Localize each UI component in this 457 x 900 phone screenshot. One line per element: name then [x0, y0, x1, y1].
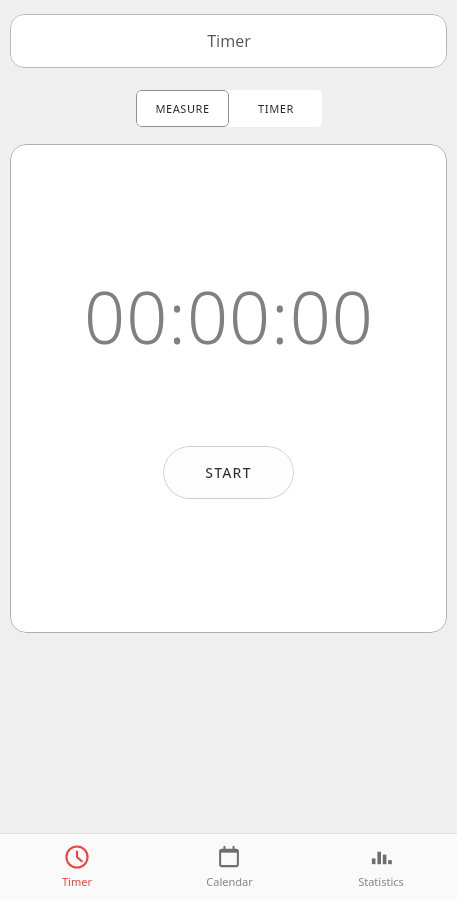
staticText: Calendar	[206, 874, 253, 889]
staticText: 00:00:00	[84, 267, 374, 365]
staticText: Timer	[207, 30, 251, 52]
staticText: Timer	[62, 874, 92, 889]
staticText: Statistics	[358, 874, 404, 889]
button[interactable]: MEASURE	[136, 90, 229, 127]
button[interactable]: Timer	[10, 14, 447, 68]
button[interactable]: Statistics	[305, 834, 457, 900]
staticText: START	[205, 463, 252, 482]
staticText: TIMER	[258, 101, 294, 116]
staticText: MEASURE	[155, 101, 210, 116]
button[interactable]: Timer	[0, 834, 153, 900]
button[interactable]: TIMER	[229, 90, 322, 127]
button[interactable]: START	[163, 446, 294, 499]
button[interactable]: Calendar	[153, 834, 305, 900]
